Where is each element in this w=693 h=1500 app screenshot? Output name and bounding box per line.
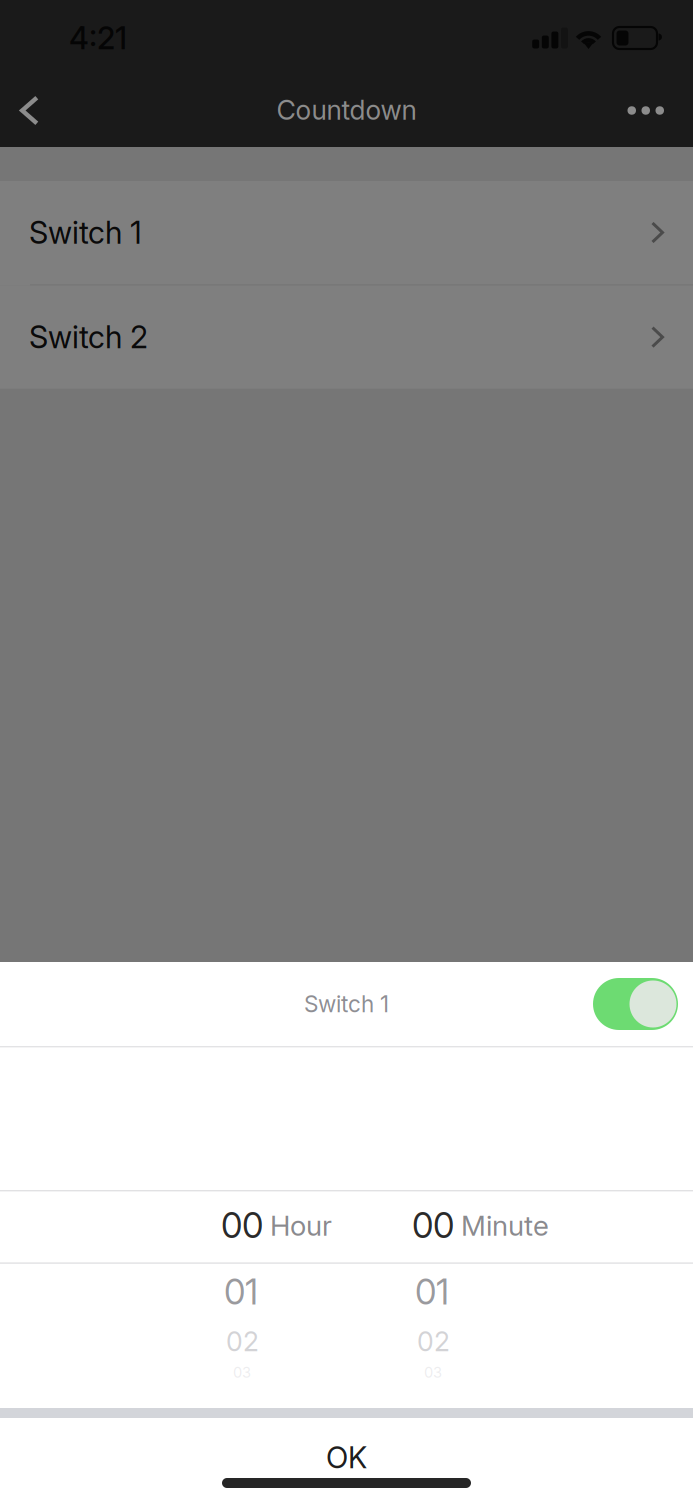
staticText: Countdown (276, 94, 416, 126)
staticText: 03 (424, 1364, 442, 1381)
button[interactable]: Switch 2 (0, 286, 693, 389)
staticText: 00 (412, 1204, 454, 1246)
staticText: 03 (233, 1364, 251, 1381)
staticText: Switch 1 (29, 214, 142, 251)
staticText: Switch 1 (304, 990, 389, 1018)
button[interactable]: Back (0, 66, 65, 147)
staticText: Switch 2 (29, 318, 148, 356)
button[interactable]: Switch 1 (0, 181, 693, 284)
button[interactable]: More options (601, 66, 693, 147)
staticText: Hour (270, 1209, 332, 1242)
staticText: 02 (226, 1325, 259, 1358)
staticText: Minute (461, 1209, 549, 1242)
button[interactable]: Switch 1, on (593, 978, 693, 1030)
staticText: 01 (224, 1271, 258, 1313)
staticText: OK (326, 1440, 367, 1475)
staticText: 02 (417, 1325, 450, 1358)
staticText: 00 (221, 1204, 263, 1246)
button[interactable]: OK (0, 1418, 693, 1478)
staticText: 4:21 (69, 19, 127, 56)
staticText: 01 (415, 1271, 449, 1313)
